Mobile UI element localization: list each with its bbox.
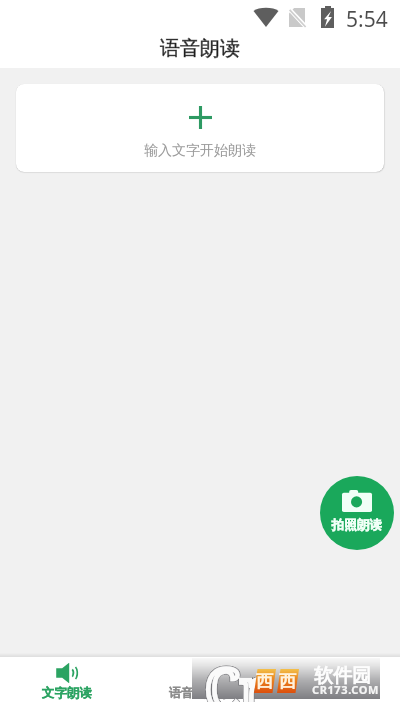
button[interactable]: 语音转文字 bbox=[134, 657, 267, 710]
staticText: 语音朗读 bbox=[160, 36, 240, 61]
staticText: Cr bbox=[205, 650, 266, 702]
button[interactable]: 我的 bbox=[267, 657, 400, 710]
button[interactable]: 输入文字开始朗读 bbox=[16, 84, 384, 172]
staticText: 软件园 bbox=[314, 664, 371, 688]
staticText: 文字朗读 bbox=[42, 685, 92, 701]
staticText: 语音朗读 bbox=[160, 36, 240, 61]
staticText: 输入文字开始朗读 bbox=[144, 142, 256, 160]
staticText: 西 bbox=[256, 671, 273, 692]
staticText: 我的 bbox=[321, 681, 346, 697]
staticText: 语音转文字 bbox=[169, 685, 232, 701]
staticText: 文字朗读 bbox=[42, 685, 92, 701]
staticText: 拍照朗读 bbox=[332, 517, 382, 533]
button[interactable]: 拍照朗读 bbox=[320, 476, 394, 550]
staticText: 我的 bbox=[321, 681, 346, 697]
staticText: CR173.COM bbox=[312, 682, 380, 697]
staticText: Cr bbox=[205, 650, 266, 702]
staticText: 西 bbox=[279, 671, 296, 692]
button[interactable]: 文字朗读 bbox=[0, 657, 134, 710]
staticText: 语音转文字 bbox=[169, 685, 232, 701]
staticText: 拍照朗读 bbox=[332, 517, 382, 533]
staticText: 5:54 bbox=[346, 5, 388, 34]
staticText: Cr bbox=[205, 650, 266, 702]
